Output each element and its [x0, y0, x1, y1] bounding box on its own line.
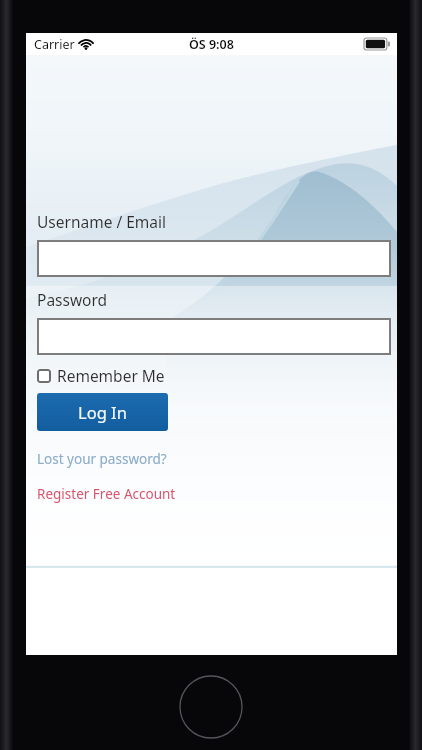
other: Home: [179, 675, 243, 739]
button[interactable]: Register Free Account: [37, 483, 176, 505]
staticText: ÖS 9:08: [189, 36, 234, 53]
staticText: Remember Me: [57, 365, 165, 386]
staticText: Log In: [78, 401, 127, 423]
button[interactable]: [37, 240, 391, 277]
button[interactable]: [37, 318, 391, 355]
staticText: Register Free Account: [37, 485, 176, 503]
staticText: Carrier: [34, 36, 75, 53]
button[interactable]: Log In: [37, 393, 168, 431]
button[interactable]: Lost your password?: [37, 448, 167, 470]
staticText: Lost your password?: [37, 450, 167, 468]
button[interactable]: Remember Me: [37, 363, 165, 388]
staticText: Username / Email: [37, 211, 167, 232]
staticText: Password: [37, 289, 108, 310]
